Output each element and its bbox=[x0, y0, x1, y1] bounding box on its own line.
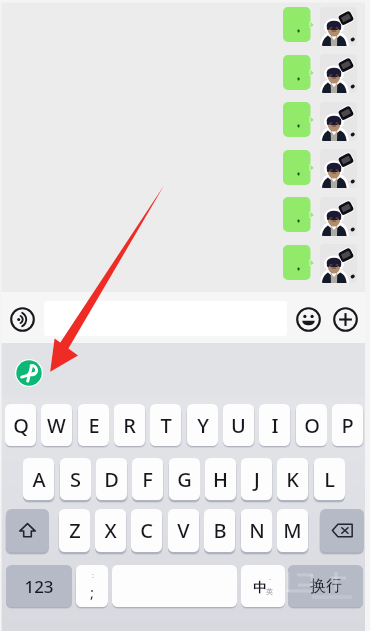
staticText: ; bbox=[90, 582, 95, 602]
button[interactable]: Contact avatar bbox=[320, 197, 357, 236]
button[interactable]: S bbox=[60, 458, 91, 500]
button[interactable]: C bbox=[131, 509, 162, 552]
button[interactable]: I bbox=[259, 404, 290, 446]
button[interactable]: L bbox=[314, 458, 345, 500]
button[interactable]: Pinduoduo shortcut bbox=[15, 359, 43, 387]
button[interactable]: K bbox=[277, 458, 308, 500]
staticText: G bbox=[177, 466, 192, 493]
button[interactable]: Q bbox=[5, 404, 36, 446]
staticText: B bbox=[213, 517, 227, 544]
button[interactable]: W bbox=[41, 404, 72, 446]
staticText: Y bbox=[197, 412, 209, 439]
staticText: H bbox=[213, 466, 228, 493]
button[interactable]: More options bbox=[332, 306, 359, 333]
button[interactable]: X bbox=[95, 509, 126, 552]
staticText: 英 bbox=[266, 587, 273, 596]
button[interactable]: U bbox=[223, 404, 254, 446]
button[interactable]: E bbox=[78, 404, 109, 446]
button[interactable]: Contact avatar bbox=[320, 244, 357, 283]
button[interactable]: Emoji bbox=[295, 306, 322, 333]
staticText: I bbox=[271, 412, 279, 439]
button[interactable]: Contact avatar bbox=[320, 54, 357, 93]
staticText: 123 bbox=[24, 575, 54, 598]
button[interactable] bbox=[283, 55, 314, 90]
button[interactable] bbox=[320, 509, 364, 552]
button[interactable] bbox=[283, 102, 314, 137]
button[interactable]: B bbox=[204, 509, 235, 552]
button[interactable]: O bbox=[296, 404, 327, 446]
staticText: V bbox=[177, 517, 190, 544]
button[interactable]: 123 bbox=[6, 565, 72, 607]
button[interactable]: D bbox=[96, 458, 127, 500]
button[interactable]: Contact avatar bbox=[320, 102, 357, 141]
button[interactable]: Voice message bbox=[9, 306, 36, 333]
button[interactable]: G bbox=[169, 458, 200, 500]
staticText: E bbox=[88, 412, 100, 439]
button[interactable]: Z bbox=[59, 509, 90, 552]
button[interactable]: J bbox=[241, 458, 272, 500]
staticText: W bbox=[47, 412, 66, 439]
staticText: 中 bbox=[253, 579, 266, 595]
staticText: P bbox=[341, 412, 354, 439]
staticText: T bbox=[160, 412, 172, 439]
staticText: F bbox=[142, 466, 153, 493]
staticText: L bbox=[324, 466, 335, 493]
staticText: S bbox=[70, 466, 81, 493]
staticText: R bbox=[123, 412, 136, 439]
button[interactable] bbox=[283, 150, 314, 185]
button[interactable]: : bbox=[76, 565, 108, 607]
staticText: O bbox=[304, 412, 320, 439]
button[interactable]: Y bbox=[187, 404, 218, 446]
staticText: Q bbox=[13, 412, 29, 439]
button[interactable] bbox=[112, 565, 237, 607]
button[interactable] bbox=[44, 301, 287, 336]
button[interactable]: N bbox=[241, 509, 272, 552]
staticText: X bbox=[104, 517, 117, 544]
button[interactable]: V bbox=[168, 509, 199, 552]
button[interactable] bbox=[283, 197, 314, 232]
button[interactable]: 中 bbox=[241, 565, 285, 607]
button[interactable]: M bbox=[277, 509, 308, 552]
staticText: U bbox=[231, 412, 246, 439]
staticText: N bbox=[249, 517, 265, 544]
staticText: 换行 bbox=[310, 576, 342, 596]
button[interactable] bbox=[283, 7, 314, 42]
button[interactable]: Contact avatar bbox=[320, 7, 357, 46]
button[interactable]: H bbox=[205, 458, 236, 500]
staticText: J bbox=[254, 466, 260, 493]
button[interactable]: Contact avatar bbox=[320, 149, 357, 188]
staticText: : bbox=[92, 571, 94, 581]
button[interactable]: A bbox=[23, 458, 54, 500]
button[interactable] bbox=[283, 245, 314, 280]
staticText: A bbox=[32, 466, 46, 493]
staticText: Z bbox=[69, 517, 81, 544]
button[interactable]: T bbox=[150, 404, 181, 446]
staticText: M bbox=[283, 517, 302, 544]
staticText: K bbox=[286, 466, 299, 493]
staticText: C bbox=[140, 517, 153, 544]
button[interactable] bbox=[6, 509, 49, 552]
staticText: D bbox=[104, 466, 119, 493]
staticText: ˋ bbox=[269, 577, 271, 587]
button[interactable]: P bbox=[332, 404, 363, 446]
button[interactable]: 换行 bbox=[288, 565, 363, 607]
button[interactable]: F bbox=[132, 458, 163, 500]
button[interactable]: R bbox=[114, 404, 145, 446]
